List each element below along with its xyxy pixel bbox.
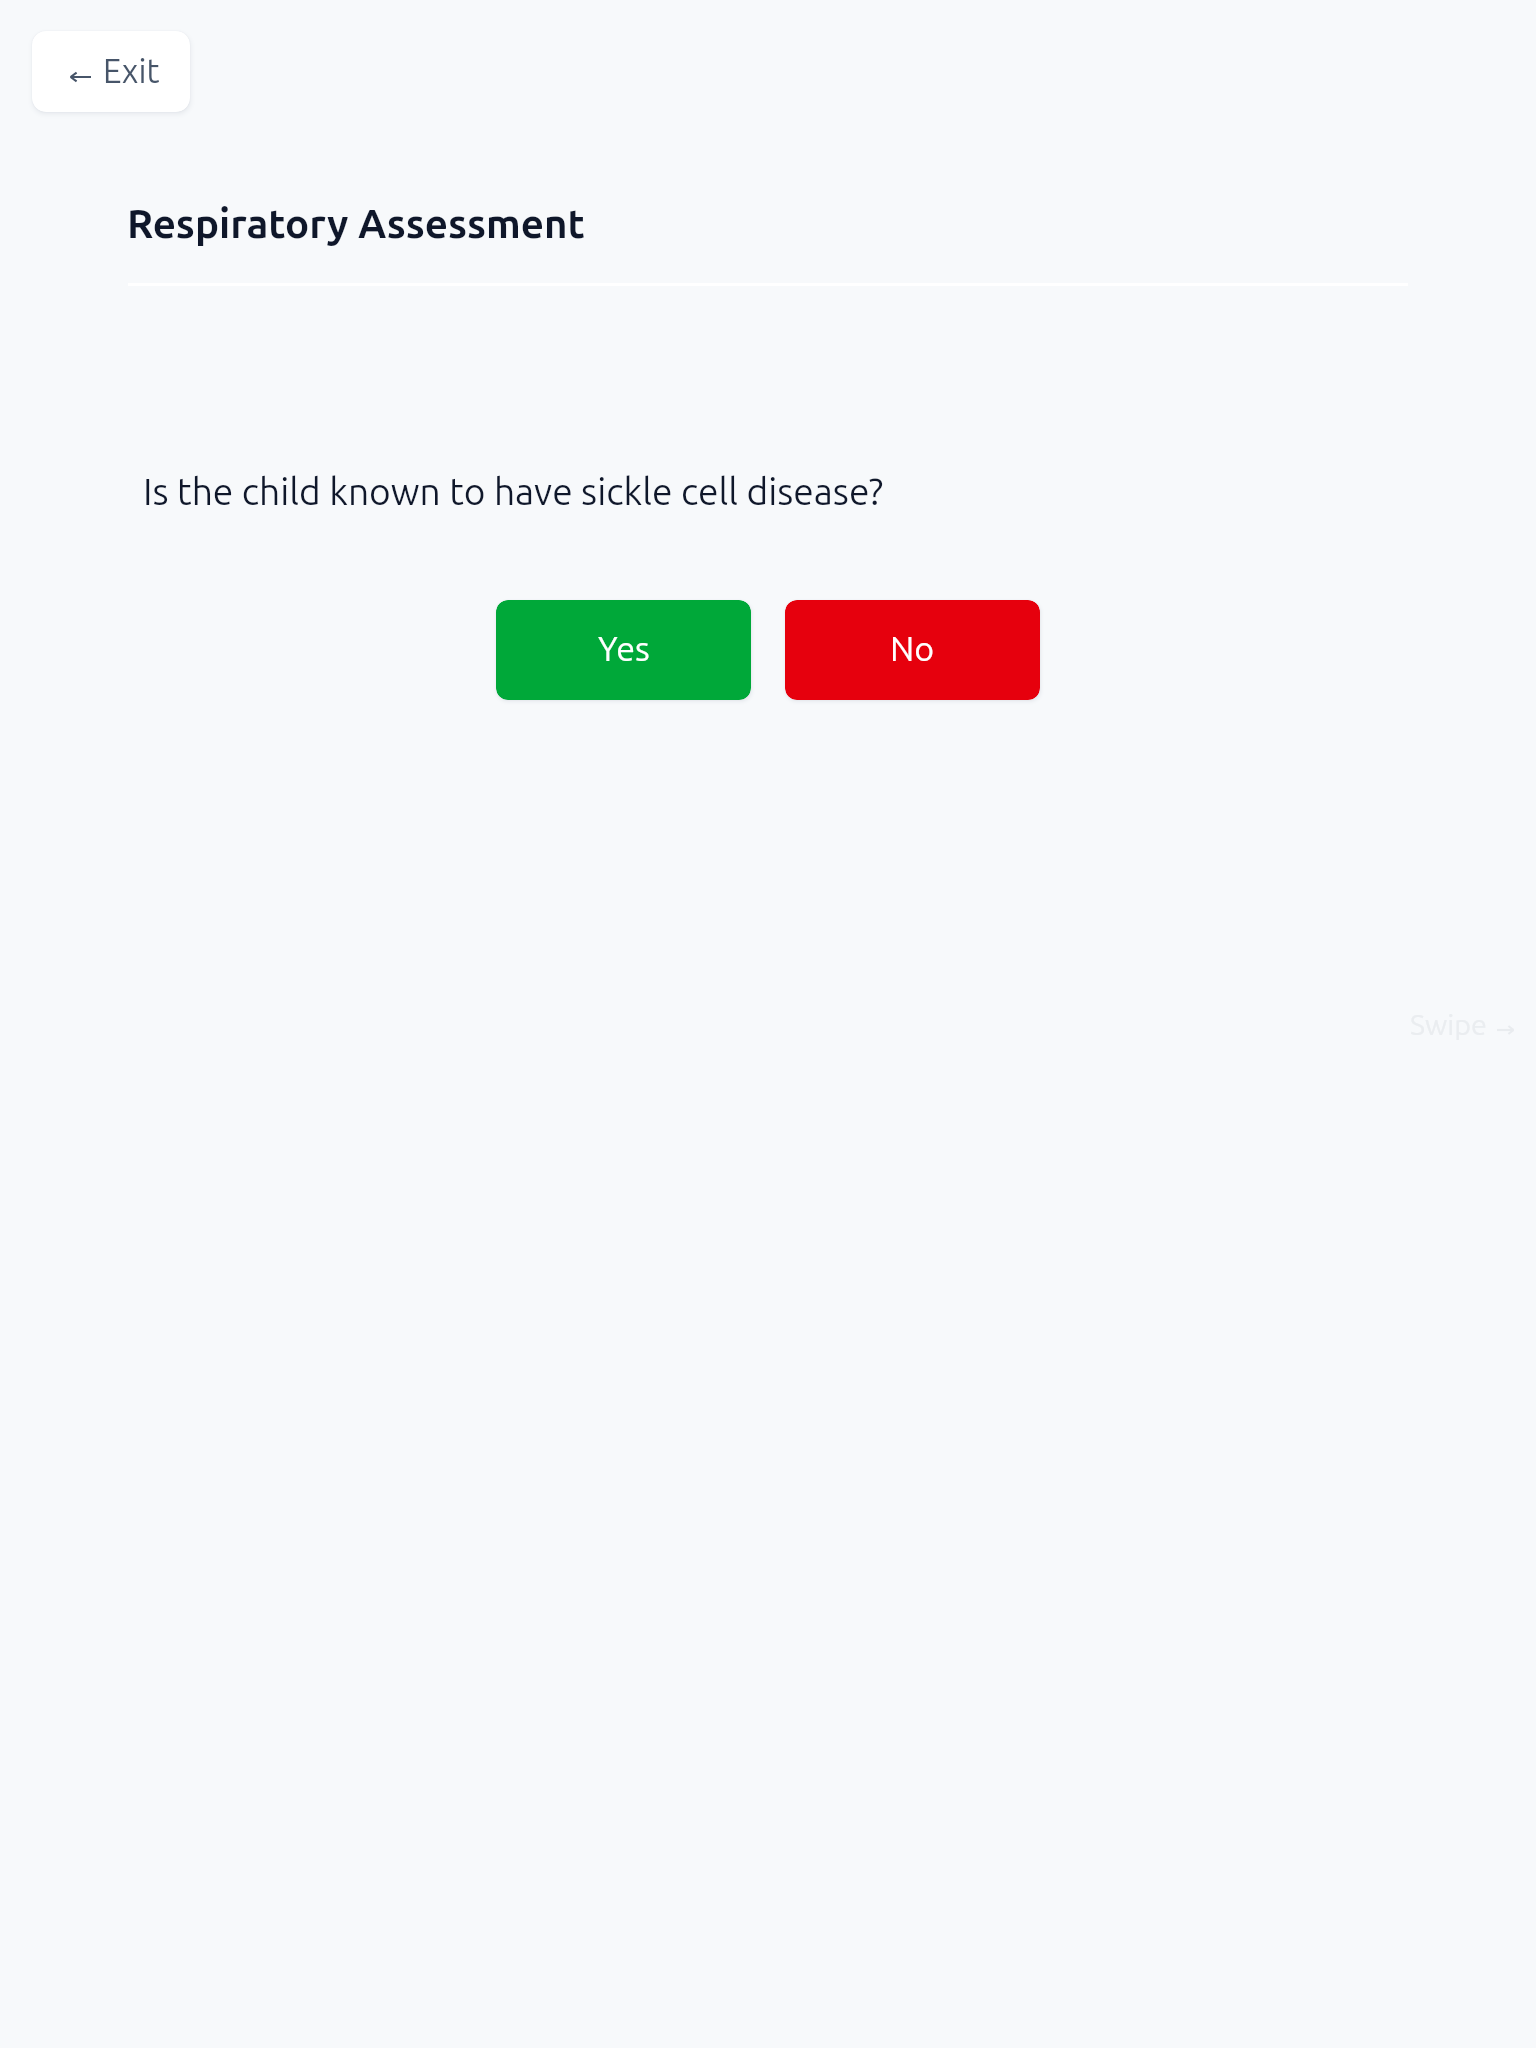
staticText: Swipe <box>1410 1008 1487 1040</box>
staticText: Respiratory Assessment <box>127 200 585 245</box>
button[interactable]: No <box>785 600 1040 700</box>
staticText: No <box>890 629 935 667</box>
button[interactable]: Exit <box>32 31 190 112</box>
staticText: Exit <box>103 52 160 89</box>
staticText: Is the child known to have sickle cell d… <box>143 470 884 512</box>
staticText: Yes <box>598 629 650 667</box>
button[interactable]: Yes <box>496 600 751 700</box>
button[interactable]: Swipe to next question <box>1410 1004 1516 1044</box>
